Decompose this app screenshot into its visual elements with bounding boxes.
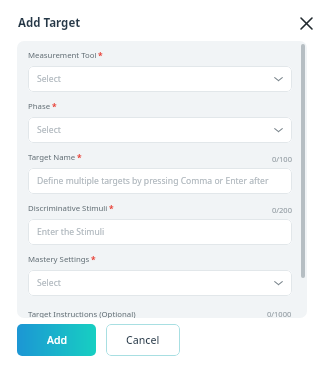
staticText: Add Target [18,15,81,31]
staticText: * [52,101,57,113]
staticText: Cancel [126,333,160,347]
staticText: 0/1000 [267,309,292,318]
button[interactable]: Add [17,324,96,356]
button[interactable]: Enter the Stimuli [28,219,292,245]
button[interactable]: Close [296,13,316,33]
staticText: Target Instructions (Optional) [28,309,136,318]
staticText: * [91,254,96,266]
button[interactable]: Define multiple targets by pressing Comm… [28,168,292,194]
button[interactable]: Select [28,66,292,92]
staticText: * [109,203,114,215]
staticText: Select [37,124,274,136]
button[interactable]: Select [28,117,292,143]
staticText: Phase [28,101,51,112]
staticText: Select [37,73,274,85]
staticText: 0/200 [272,205,292,215]
button[interactable]: Cancel [106,324,180,356]
staticText: Mastery Settings [28,254,90,265]
staticText: * [98,50,103,62]
staticText: 0/100 [272,154,292,164]
staticText: Define multiple targets by pressing Comm… [37,175,283,187]
staticText: Target Name [28,152,76,163]
staticText: Measurement Tool [28,50,97,61]
staticText: Discriminative Stimuli [28,203,108,214]
staticText: * [77,152,82,164]
staticText: Add [47,333,67,347]
staticText: Select [37,277,274,289]
button[interactable]: Select [28,270,292,296]
staticText: Enter the Stimuli [37,226,283,238]
